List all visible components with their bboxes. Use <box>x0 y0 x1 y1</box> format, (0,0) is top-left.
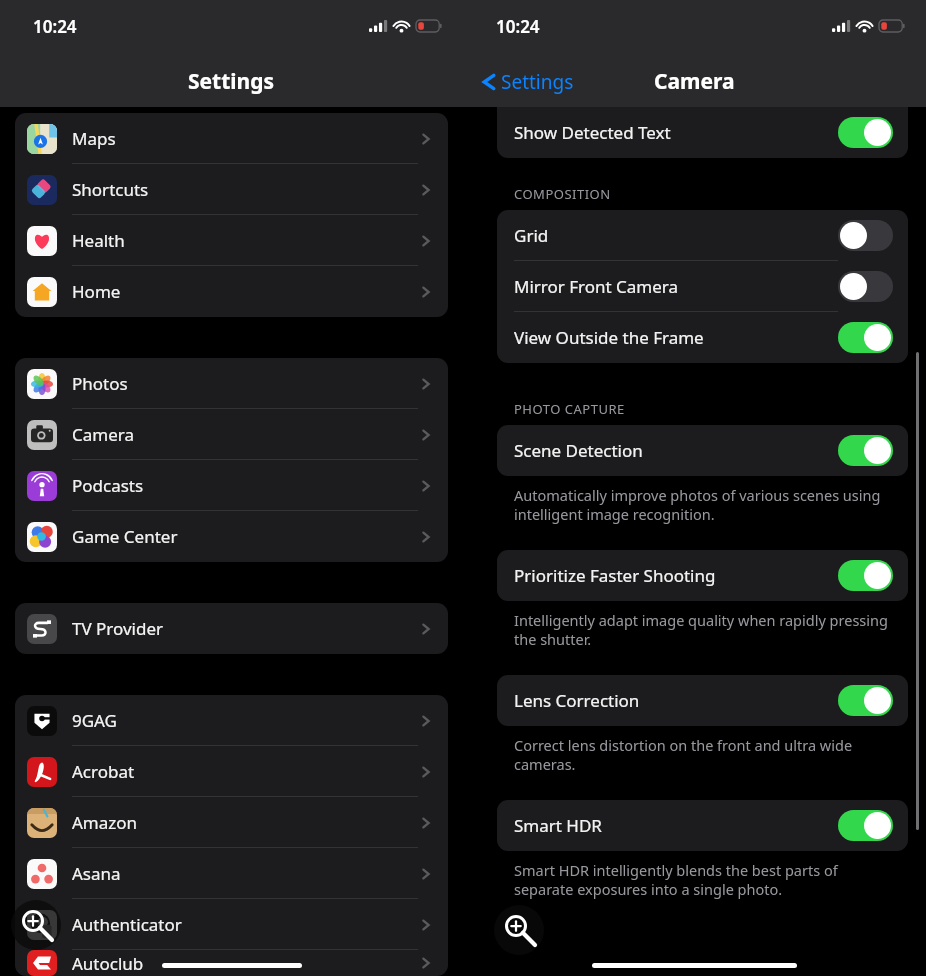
staticText: Show Detected Text <box>514 121 671 144</box>
button[interactable]: Health <box>15 215 448 266</box>
staticText: Smart HDR <box>514 814 602 837</box>
staticText: Settings <box>188 67 275 96</box>
staticText: Asana <box>72 862 121 885</box>
staticText: PHOTO CAPTURE <box>514 400 625 418</box>
button[interactable]: Zoom in <box>494 905 544 955</box>
staticText: Camera <box>72 423 134 446</box>
button[interactable]: 9GAG <box>15 695 448 746</box>
button[interactable]: Camera <box>15 409 448 460</box>
staticText: Smart HDR intelligently blends the best … <box>514 860 890 899</box>
staticText: Mirror Front Camera <box>514 275 679 298</box>
staticText: Scene Detection <box>514 439 643 462</box>
button[interactable]: Scene Detection <box>497 425 908 476</box>
staticText: Acrobat <box>72 760 135 783</box>
button[interactable]: Shortcuts <box>15 164 448 215</box>
button[interactable]: Autoclub <box>15 950 448 976</box>
button[interactable]: Mirror Front Camera <box>497 261 908 312</box>
button[interactable]: Mirror Front Camera off <box>838 271 893 302</box>
button[interactable]: Prioritize Faster Shooting <box>497 550 908 601</box>
button[interactable]: Zoom in <box>11 900 61 950</box>
button[interactable]: TV Provider <box>15 603 448 654</box>
staticText: Correct lens distortion on the front and… <box>514 735 890 774</box>
button[interactable]: Prioritize Faster Shooting on <box>838 560 893 591</box>
staticText: Maps <box>72 127 116 150</box>
staticText: Grid <box>514 224 549 247</box>
staticText: Authenticator <box>72 913 182 936</box>
button[interactable]: Podcasts <box>15 460 448 511</box>
staticText: Game Center <box>72 525 178 548</box>
button[interactable]: Grid off <box>838 220 893 251</box>
button[interactable]: Smart HDR <box>497 800 908 851</box>
staticText: Lens Correction <box>514 689 640 712</box>
staticText: Health <box>72 229 125 252</box>
staticText: Photos <box>72 372 128 395</box>
staticText: Podcasts <box>72 474 144 497</box>
staticText: Home <box>72 280 121 303</box>
button[interactable]: Settings <box>477 65 578 99</box>
staticText: Amazon <box>72 811 138 834</box>
staticText: Automatically improve photos of various … <box>514 485 890 524</box>
staticText: View Outside the Frame <box>514 326 704 349</box>
button[interactable]: Grid <box>497 210 908 261</box>
button[interactable]: Amazon <box>15 797 448 848</box>
button[interactable]: Photos <box>15 358 448 409</box>
staticText: 10:24 <box>496 15 540 38</box>
button[interactable]: Game Center <box>15 511 448 562</box>
staticText: COMPOSITION <box>514 185 611 203</box>
staticText: TV Provider <box>72 617 164 640</box>
button[interactable]: Acrobat <box>15 746 448 797</box>
button[interactable]: Asana <box>15 848 448 899</box>
staticText: 10:24 <box>33 15 77 38</box>
button[interactable]: Lens Correction <box>497 675 908 726</box>
button[interactable]: Home <box>15 266 448 317</box>
staticText: Settings <box>501 69 574 95</box>
button[interactable]: Show Detected Text on <box>838 117 893 148</box>
button[interactable]: Authenticator <box>15 899 448 950</box>
button[interactable]: Scene Detection on <box>838 435 893 466</box>
staticText: Intelligently adapt image quality when r… <box>514 610 890 649</box>
button[interactable]: View Outside the Frame on <box>838 322 893 353</box>
staticText: Camera <box>654 67 735 96</box>
staticText: Prioritize Faster Shooting <box>514 564 716 587</box>
staticText: Autoclub <box>72 952 144 975</box>
button[interactable]: Show Detected Text <box>497 107 908 158</box>
staticText: Shortcuts <box>72 178 149 201</box>
button[interactable]: Maps <box>15 113 448 164</box>
staticText: 9GAG <box>72 709 117 732</box>
button[interactable]: View Outside the Frame <box>497 312 908 363</box>
button[interactable]: Lens Correction on <box>838 685 893 716</box>
button[interactable]: Smart HDR on <box>838 810 893 841</box>
